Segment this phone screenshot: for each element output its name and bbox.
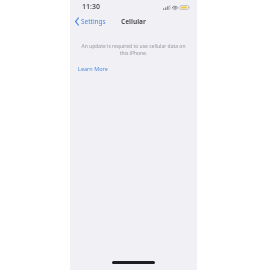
other: Wi-Fi (172, 5, 178, 10)
button[interactable]: Settings (70, 15, 110, 28)
staticText: 11:30 (82, 2, 100, 12)
other: Cellular signal (163, 5, 170, 10)
staticText: An update is required to use cellular da… (78, 43, 189, 57)
staticText: Learn More (78, 65, 108, 72)
button[interactable]: Learn More (75, 63, 111, 74)
other: Battery, Low Power Mode (180, 5, 190, 10)
staticText: Settings (81, 17, 106, 26)
staticText: Cellular (121, 17, 146, 26)
